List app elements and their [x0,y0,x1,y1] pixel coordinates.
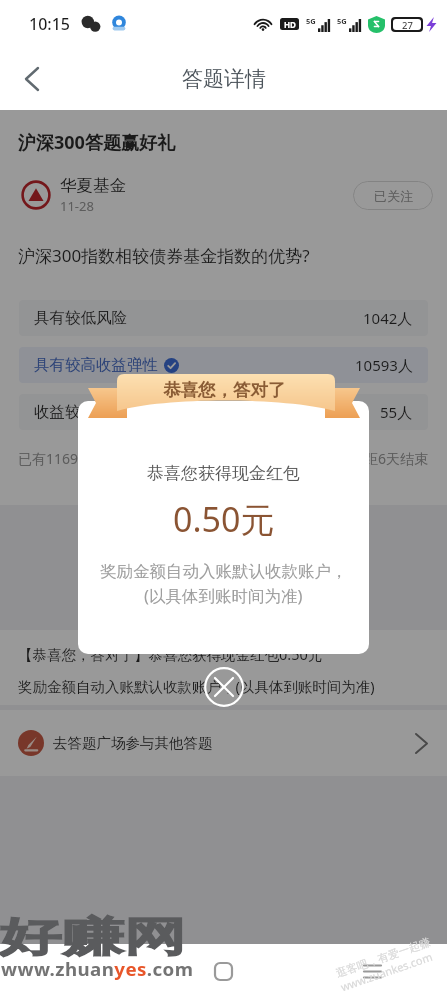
staticText: (以具体到账时间为准) [144,584,303,607]
staticText: 1042人 [363,308,413,328]
staticText: 华夏基金 [60,175,126,196]
button[interactable]: Back [8,55,56,103]
staticText: 恭喜您获得现金红包 [147,463,300,484]
staticText: 沪深300指数相较债券基金指数的优势? [18,244,310,267]
staticText: 恭喜您，答对了 [163,379,286,401]
button[interactable]: 具有较低风险 [19,300,428,336]
button[interactable]: 去答题广场参与其他答题 [18,710,427,776]
staticText: HD [284,19,296,30]
staticText: 55人 [380,402,413,422]
staticText: 10:15 [29,13,70,35]
staticText: 具有较高收益弹性 [34,355,158,375]
button[interactable]: 收益较低 [19,394,428,430]
staticText: 27 [402,19,413,30]
staticText: 收益较低 [34,402,96,422]
staticText: 答题详情 [182,66,266,92]
button[interactable]: Back [0,944,149,999]
staticText: 好赚网 [0,912,186,963]
staticText: 已有11690人答题 [18,449,129,468]
staticText: 奖励金额自动入账默认收款账户，(以具体到账时间为准) [18,676,375,696]
staticText: 已关注 [374,188,413,204]
button[interactable]: Close [202,665,246,709]
staticText: www.zuankes.com [338,949,434,994]
staticText: 距6天结束 [364,449,429,468]
button[interactable]: 具有较高收益弹性 [19,347,428,383]
staticText: 10593人 [355,355,413,375]
button[interactable]: Recent apps [298,944,447,999]
staticText: 逛客吧，有爱一起赚 [334,935,432,980]
staticText: 沪深300答题赢好礼 [18,130,175,155]
button[interactable]: 已关注 [353,181,433,210]
staticText: 去答题广场参与其他答题 [53,734,213,752]
staticText: 奖励金额自动入账默认收款账户， [100,561,348,582]
staticText: 【恭喜您，答对了】恭喜您获得现金红包0.50元 [18,644,323,664]
staticText: 0.50元 [173,496,275,542]
staticText: 11-28 [60,197,94,215]
staticText: www.zhuanyes.com [1,957,193,982]
button[interactable]: Home [149,944,298,999]
staticText: 5G [337,16,347,26]
staticText: 5G [306,16,316,26]
staticText: 具有较低风险 [34,308,127,328]
